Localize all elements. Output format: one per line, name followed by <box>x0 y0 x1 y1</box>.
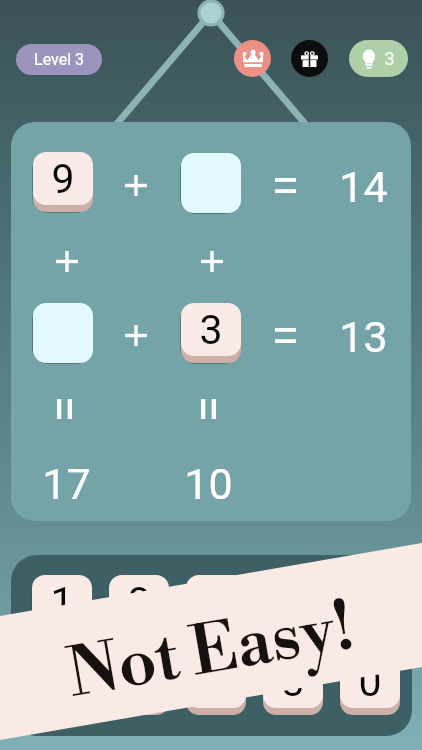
button[interactable]: Hints: 3 <box>349 40 408 77</box>
button[interactable]: 4 <box>263 575 323 628</box>
staticText: 13 <box>339 312 388 362</box>
staticText: 3 <box>281 658 305 706</box>
button[interactable]: Gift <box>291 40 328 77</box>
button[interactable]: 3 <box>263 655 323 708</box>
staticText: 1 <box>50 578 74 626</box>
staticText: Level 3 <box>34 50 84 69</box>
staticText: 0 <box>358 658 382 706</box>
button[interactable]: 0 <box>340 655 400 708</box>
button[interactable]: 6 <box>186 575 246 628</box>
button[interactable]: Empty slot <box>181 153 241 213</box>
staticText: 3 <box>199 306 223 354</box>
button[interactable]: Level 3 <box>16 44 102 75</box>
staticText: 8 <box>127 578 151 626</box>
button[interactable]: 5 <box>109 655 169 708</box>
staticText: Not Easy! <box>61 586 360 718</box>
button[interactable]: 3 <box>181 303 241 356</box>
staticText: 17 <box>42 459 91 509</box>
button[interactable]: 8 <box>109 575 169 628</box>
button[interactable]: Rewards <box>234 40 271 77</box>
staticText: 10 <box>184 459 233 509</box>
button[interactable]: 9 <box>186 655 246 708</box>
staticText: 3 <box>384 48 395 69</box>
staticText: 2 <box>50 658 74 706</box>
button[interactable]: 7 <box>340 575 400 628</box>
staticText: 9 <box>204 658 228 706</box>
staticText: 9 <box>51 155 75 203</box>
staticText: 14 <box>339 162 388 212</box>
staticText: 6 <box>204 578 228 626</box>
button[interactable]: Empty slot <box>33 303 93 363</box>
staticText: 4 <box>281 578 305 626</box>
button[interactable]: 2 <box>32 655 92 708</box>
button[interactable]: 9 <box>33 152 93 205</box>
staticText: 5 <box>127 658 151 706</box>
button[interactable]: 1 <box>32 575 92 628</box>
